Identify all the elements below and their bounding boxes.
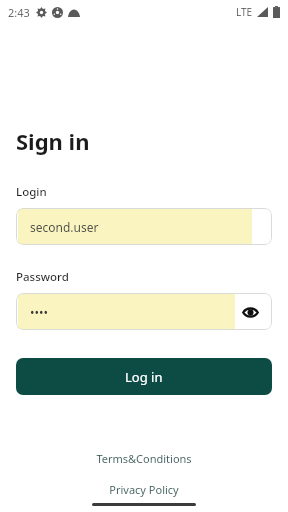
staticText: Privacy Policy — [109, 482, 179, 497]
button[interactable]: second.user — [16, 208, 272, 245]
staticText: Terms&Conditions — [96, 451, 192, 466]
button[interactable]: •••• — [16, 293, 272, 330]
button[interactable]: Show password — [238, 300, 262, 324]
button[interactable]: Log in — [16, 358, 272, 395]
staticText: 2:43 — [8, 5, 30, 20]
staticText: Login — [16, 184, 47, 200]
button[interactable]: Privacy Policy — [103, 480, 185, 499]
staticText: second.user — [30, 219, 99, 235]
staticText: LTE — [236, 5, 253, 19]
staticText: •••• — [30, 304, 49, 320]
button[interactable]: Terms&Conditions — [90, 449, 198, 468]
staticText: Password — [16, 269, 69, 285]
staticText: Sign in — [16, 126, 90, 156]
staticText: Log in — [125, 368, 163, 386]
